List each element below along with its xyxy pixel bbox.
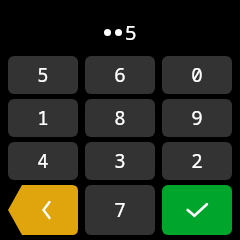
staticText: 4 [37, 148, 49, 174]
button[interactable]: 8 [85, 99, 155, 137]
staticText: 8 [114, 105, 126, 131]
button[interactable]: 0 [162, 56, 232, 94]
button[interactable]: 7 [85, 185, 155, 235]
button[interactable]: Backspace [8, 185, 78, 235]
button[interactable]: 6 [85, 56, 155, 94]
button[interactable]: 1 [8, 99, 78, 137]
button[interactable]: 2 [162, 142, 232, 180]
staticText: 6 [114, 62, 126, 88]
staticText: 5 [37, 62, 49, 88]
staticText: 3 [114, 148, 126, 174]
staticText: 1 [37, 105, 49, 131]
staticText: 2 [191, 148, 203, 174]
button[interactable]: 4 [8, 142, 78, 180]
button[interactable]: 5 [8, 56, 78, 94]
button[interactable]: 9 [162, 99, 232, 137]
staticText: 7 [114, 197, 126, 223]
staticText: 5 [125, 19, 137, 46]
staticText: 9 [191, 105, 203, 131]
button[interactable]: Confirm [162, 185, 232, 235]
staticText: 0 [191, 62, 203, 88]
button[interactable]: 3 [85, 142, 155, 180]
